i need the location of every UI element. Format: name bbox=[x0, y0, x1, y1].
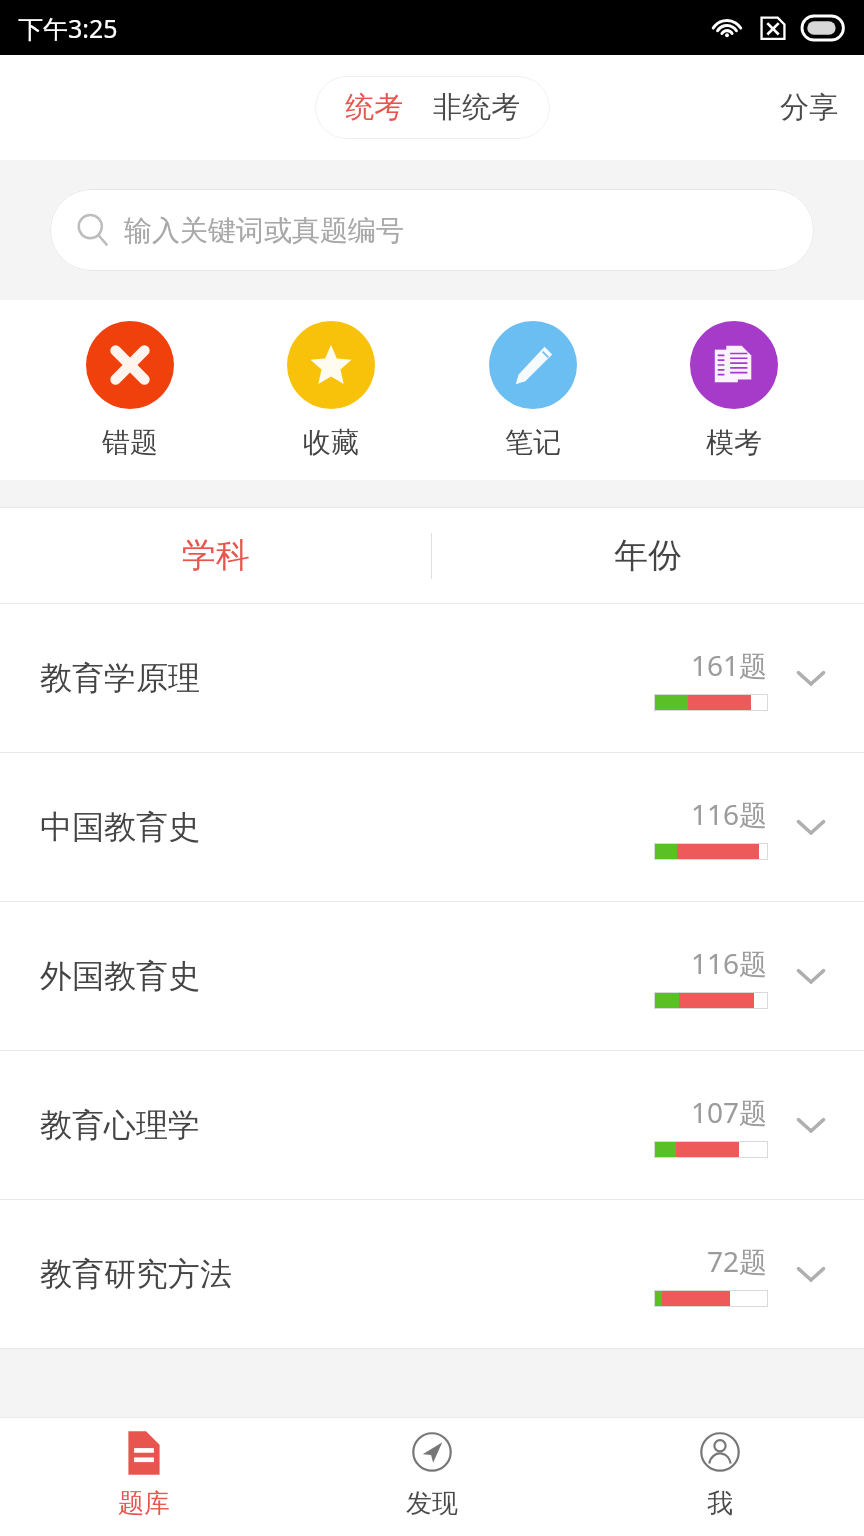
staticText: 教育研究方法 bbox=[40, 1254, 232, 1294]
staticText: 下午3:25 bbox=[18, 11, 118, 45]
staticText: 收藏 bbox=[303, 425, 359, 460]
button[interactable]: 学科 bbox=[0, 508, 431, 603]
button[interactable]: 年份 bbox=[432, 508, 864, 603]
staticText: 116题 bbox=[691, 795, 768, 833]
other: 展开 bbox=[788, 953, 834, 999]
button[interactable]: 我 bbox=[576, 1418, 864, 1528]
staticText: 题库 bbox=[118, 1487, 170, 1520]
other: 展开 bbox=[788, 804, 834, 850]
staticText: 教育心理学 bbox=[40, 1105, 200, 1145]
other: 展开 bbox=[788, 655, 834, 701]
staticText: 分享 bbox=[780, 89, 838, 126]
button[interactable]: 输入关键词或真题编号 bbox=[50, 189, 814, 271]
staticText: 模考 bbox=[706, 425, 762, 460]
staticText: 161题 bbox=[691, 646, 768, 684]
staticText: 学科 bbox=[182, 534, 250, 577]
staticText: 笔记 bbox=[505, 425, 561, 460]
staticText: 107题 bbox=[691, 1093, 768, 1131]
button[interactable]: 非统考 bbox=[418, 76, 550, 139]
button[interactable]: 统考 bbox=[315, 76, 418, 139]
button[interactable]: 外国教育史 bbox=[0, 902, 864, 1050]
button[interactable]: 分享 bbox=[754, 71, 864, 144]
button[interactable]: 题库 bbox=[0, 1418, 288, 1528]
staticText: 输入关键词或真题编号 bbox=[124, 213, 404, 248]
staticText: 统考 bbox=[345, 89, 403, 126]
staticText: 外国教育史 bbox=[40, 956, 200, 996]
button[interactable]: 错题 bbox=[58, 313, 202, 468]
staticText: 发现 bbox=[406, 1487, 458, 1520]
staticText: 错题 bbox=[102, 425, 158, 460]
staticText: 我 bbox=[707, 1487, 733, 1520]
button[interactable]: 教育研究方法 bbox=[0, 1200, 864, 1348]
staticText: 116题 bbox=[691, 944, 768, 982]
staticText: 非统考 bbox=[433, 89, 520, 126]
button[interactable]: 笔记 bbox=[461, 313, 605, 468]
button[interactable]: 教育心理学 bbox=[0, 1051, 864, 1199]
staticText: 教育学原理 bbox=[40, 658, 200, 698]
button[interactable]: 收藏 bbox=[259, 313, 403, 468]
other: 展开 bbox=[788, 1102, 834, 1148]
staticText: 年份 bbox=[614, 534, 682, 577]
button[interactable]: 发现 bbox=[288, 1418, 576, 1528]
button[interactable]: 模考 bbox=[662, 313, 806, 468]
button[interactable]: 中国教育史 bbox=[0, 753, 864, 901]
button[interactable]: 教育学原理 bbox=[0, 604, 864, 752]
staticText: 中国教育史 bbox=[40, 807, 200, 847]
other: 展开 bbox=[788, 1251, 834, 1297]
staticText: 72题 bbox=[707, 1242, 768, 1280]
